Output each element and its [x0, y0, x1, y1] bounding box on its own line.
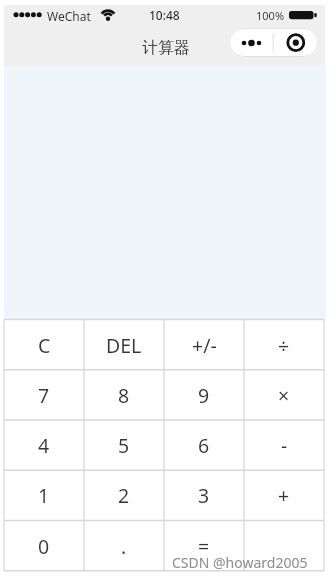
staticText: ÷ [278, 332, 290, 359]
staticText: 5 [118, 432, 130, 459]
button[interactable]: 3 [164, 470, 244, 520]
staticText: + [278, 482, 290, 509]
staticText: CSDN @howard2005 [172, 553, 308, 571]
button[interactable]: DEL [84, 320, 164, 370]
button[interactable]: × [244, 370, 324, 420]
staticText: 3 [198, 482, 210, 509]
staticText: 100% [256, 8, 285, 22]
staticText: 7 [38, 382, 50, 409]
button[interactable]: 1 [4, 470, 84, 520]
button[interactable]: + [244, 470, 324, 520]
button[interactable]: = [164, 521, 244, 571]
staticText: +/- [192, 332, 217, 359]
button[interactable]: 2 [84, 470, 164, 520]
button[interactable]: 6 [164, 420, 244, 470]
staticText: 计算器 [142, 38, 190, 56]
button[interactable]: 5 [84, 420, 164, 470]
button[interactable]: 7 [4, 370, 84, 420]
staticText: = [198, 533, 210, 560]
staticText: . [121, 533, 127, 560]
staticText: 1 [38, 482, 50, 509]
button[interactable] [244, 521, 324, 571]
button[interactable] [229, 28, 318, 57]
staticText: DEL [106, 332, 142, 359]
button[interactable]: 4 [4, 420, 84, 470]
button[interactable]: - [244, 420, 324, 470]
staticText: C [38, 332, 51, 359]
staticText: 2 [118, 482, 130, 509]
staticText: 9 [198, 382, 210, 409]
staticText: 0 [38, 533, 50, 560]
staticText: × [278, 382, 290, 409]
button[interactable]: +/- [164, 320, 244, 370]
staticText: 8 [118, 382, 130, 409]
button[interactable]: 0 [4, 521, 84, 571]
button[interactable]: ÷ [244, 320, 324, 370]
button[interactable]: C [4, 320, 84, 370]
button[interactable]: 9 [164, 370, 244, 420]
button[interactable]: . [84, 521, 164, 571]
staticText: 10:48 [149, 7, 180, 21]
staticText: 4 [38, 432, 50, 459]
staticText: 6 [198, 432, 210, 459]
staticText: - [281, 432, 288, 459]
staticText: WeChat [47, 8, 91, 22]
button[interactable]: 8 [84, 370, 164, 420]
